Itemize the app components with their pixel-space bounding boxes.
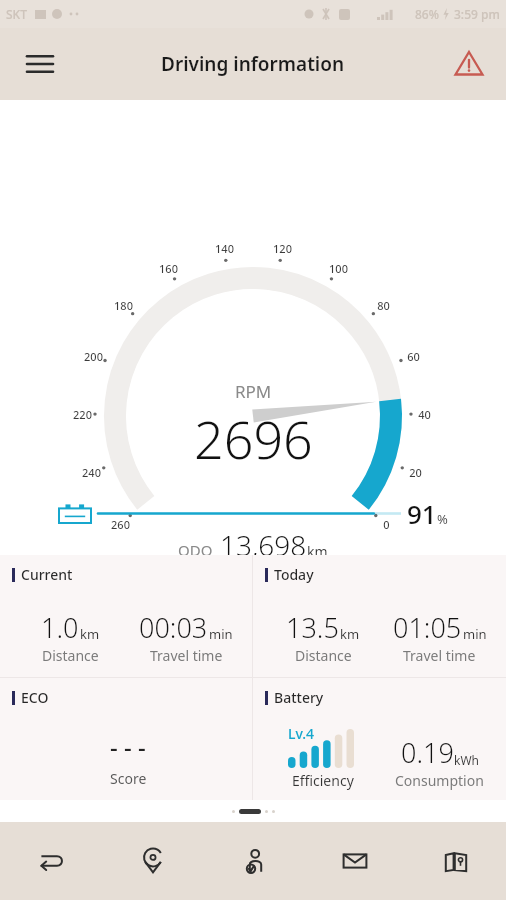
staticText: Lv.4 [288, 724, 315, 743]
staticText: km [307, 542, 328, 561]
staticText: 01:05 [393, 609, 462, 646]
staticText: Travel time [150, 646, 223, 665]
staticText: Score [110, 769, 147, 788]
staticText: Today [274, 565, 314, 584]
staticText: 180 [114, 298, 133, 313]
staticText: SKT [6, 6, 27, 22]
button[interactable]: Current [0, 555, 252, 677]
staticText: 40 [418, 407, 431, 422]
staticText: min [463, 625, 487, 643]
button[interactable]: Messages [304, 822, 405, 900]
staticText: % [437, 510, 448, 528]
staticText: 60 [407, 349, 420, 364]
staticText: Consumption [395, 771, 484, 790]
staticText: 3:59 pm [454, 6, 500, 22]
staticText: Driving information [161, 51, 345, 77]
staticText: 240 [82, 465, 101, 480]
staticText: 2696 [194, 403, 313, 474]
button[interactable]: Profile [203, 822, 304, 900]
staticText: ODO [178, 540, 213, 560]
staticText: km [80, 625, 100, 643]
staticText: Distance [42, 646, 99, 665]
staticText: 80 [377, 298, 390, 313]
button[interactable]: Menu [14, 38, 66, 90]
staticText: 200 [84, 349, 103, 364]
staticText: 140 [215, 241, 234, 256]
staticText: Current [21, 565, 73, 584]
staticText: 13,698 [220, 526, 307, 564]
button[interactable]: ECO [0, 678, 252, 800]
staticText: Efficiency [292, 771, 354, 790]
staticText: 86% [415, 6, 439, 22]
staticText: 00:03 [139, 609, 208, 646]
staticText: 1.0 [41, 609, 79, 646]
button[interactable]: Map [405, 822, 506, 900]
staticText: 100 [329, 261, 348, 276]
button[interactable]: Back [0, 822, 102, 900]
staticText: - - - [110, 730, 146, 763]
button[interactable]: Today [253, 555, 506, 677]
staticText: km [340, 625, 360, 643]
staticText: 120 [273, 241, 292, 256]
staticText: 160 [159, 261, 178, 276]
button[interactable]: Location [102, 822, 203, 900]
staticText: 91 [407, 496, 437, 531]
staticText: Travel time [403, 646, 476, 665]
staticText: 0.19 [401, 734, 454, 771]
staticText: 20 [409, 465, 422, 480]
staticText: 0 [383, 517, 390, 532]
button[interactable]: Battery [253, 678, 506, 800]
button[interactable]: Warning [444, 39, 494, 89]
staticText: min [209, 625, 233, 643]
staticText: ECO [21, 688, 49, 707]
staticText: 260 [111, 517, 130, 532]
staticText: RPM [235, 380, 272, 403]
staticText: kWh [454, 752, 479, 768]
staticText: Distance [295, 646, 352, 665]
staticText: Battery [274, 688, 324, 707]
staticText: 13.5 [286, 609, 339, 646]
staticText: 220 [73, 407, 92, 422]
